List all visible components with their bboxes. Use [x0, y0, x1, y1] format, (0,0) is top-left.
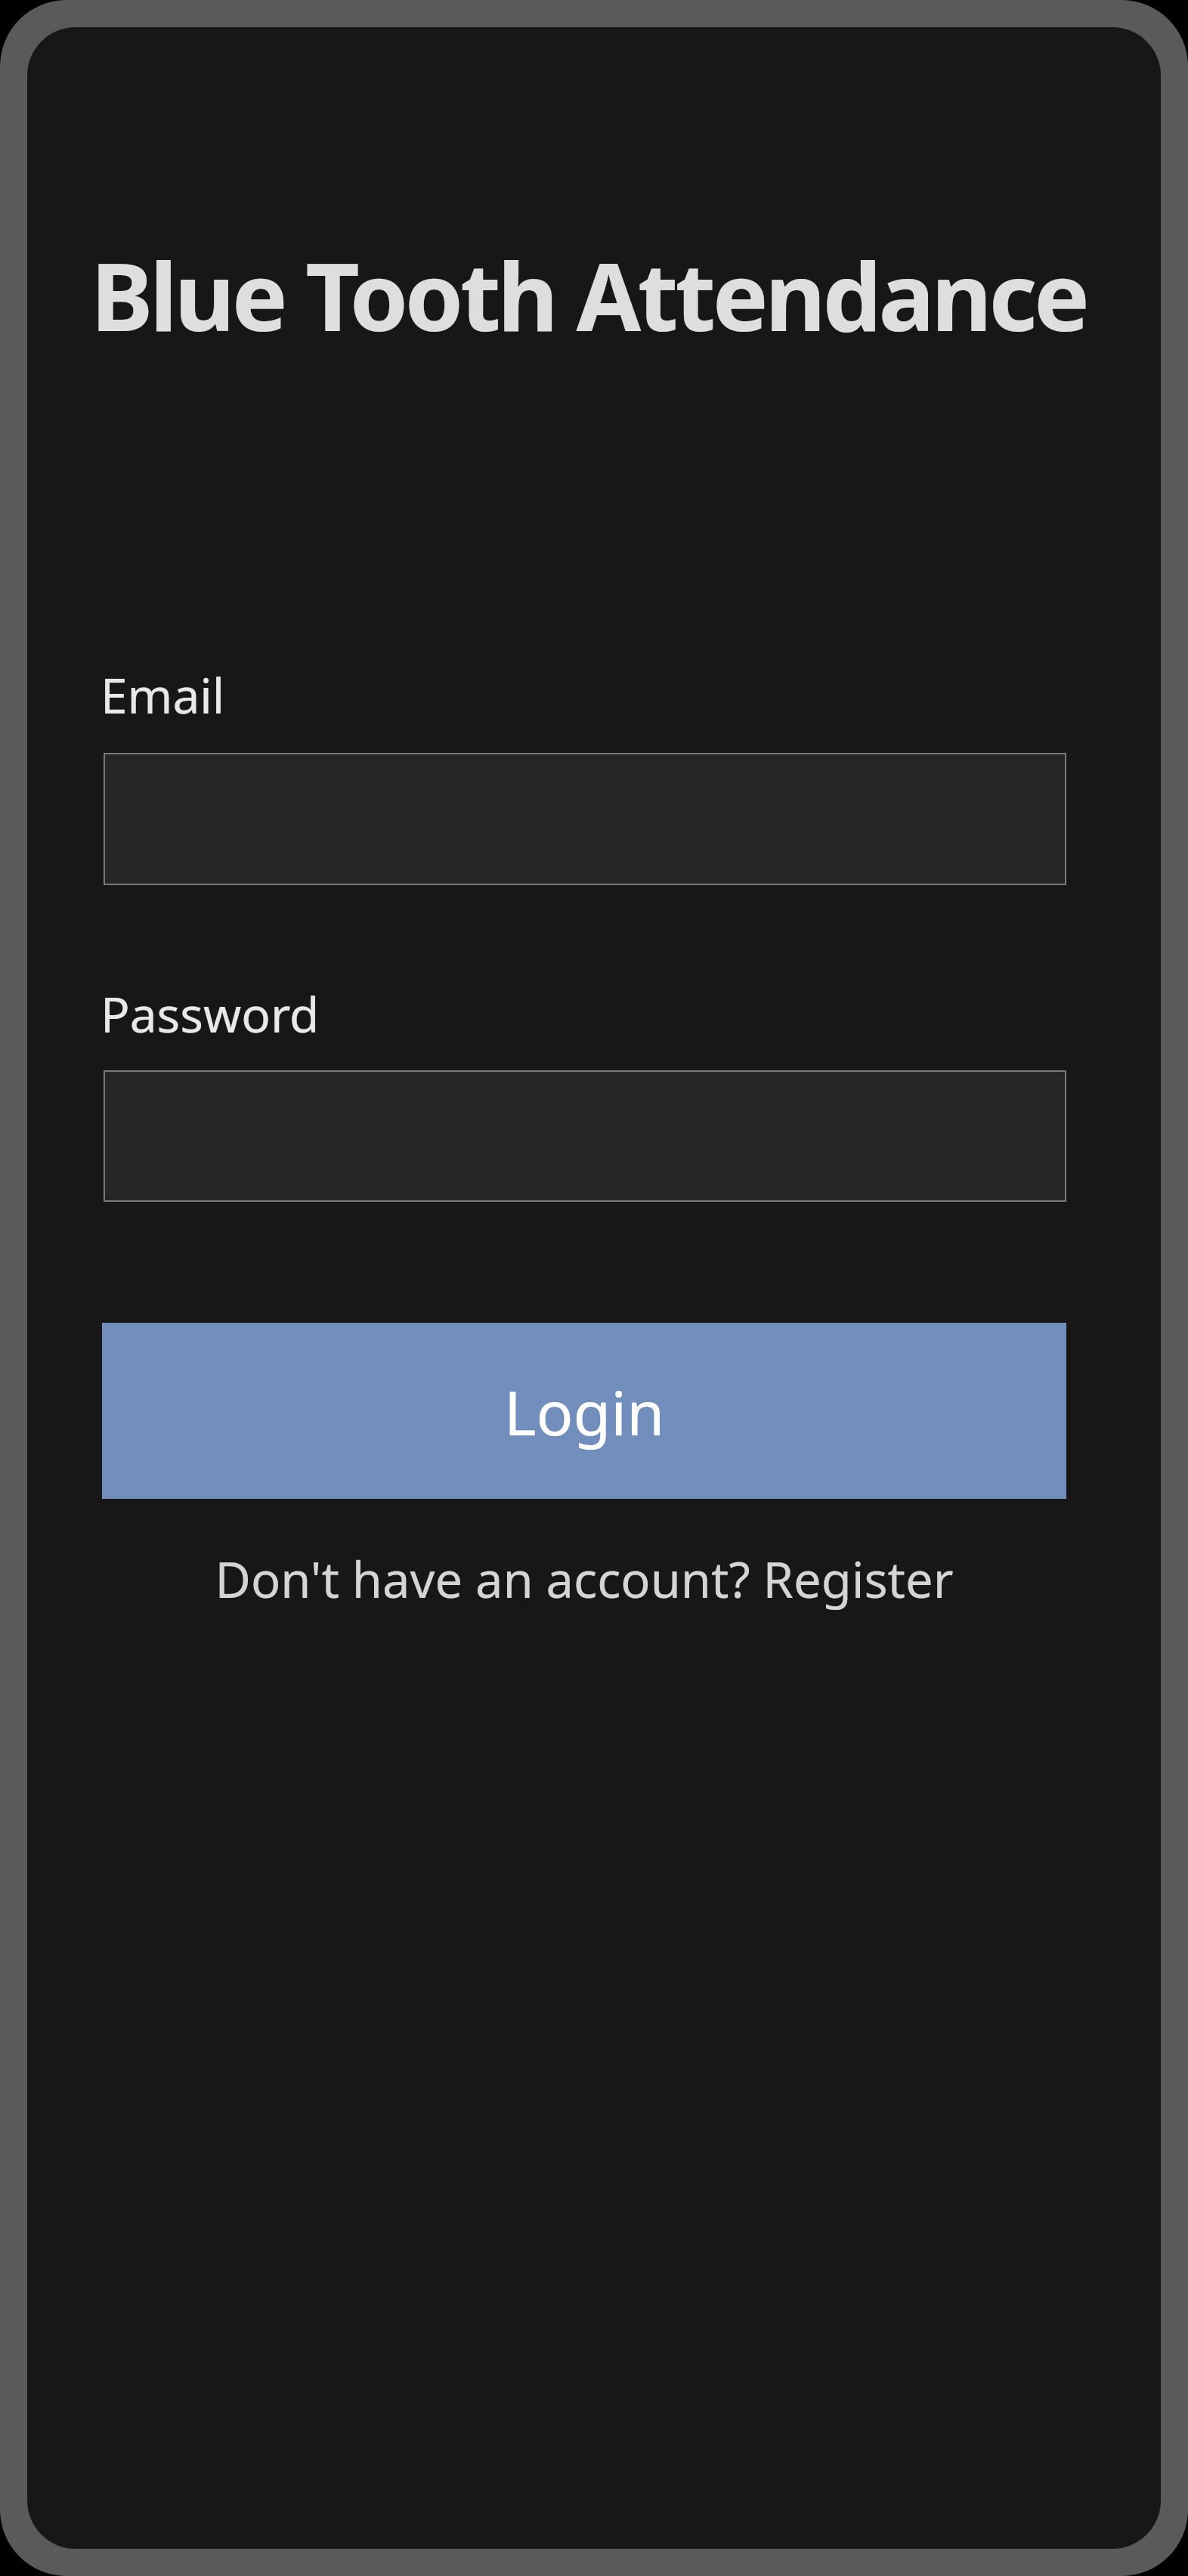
staticText: Password [101, 981, 320, 1047]
button[interactable] [104, 1070, 1066, 1202]
button[interactable]: Don't have an account? Register [102, 1546, 1066, 1613]
staticText: Blue Tooth Attendance [91, 231, 1087, 358]
staticText: Login [504, 1370, 665, 1453]
staticText: Don't have an account? Register [215, 1546, 954, 1613]
staticText: Email [101, 662, 225, 728]
button[interactable] [104, 753, 1066, 885]
button[interactable]: Login [102, 1323, 1066, 1499]
